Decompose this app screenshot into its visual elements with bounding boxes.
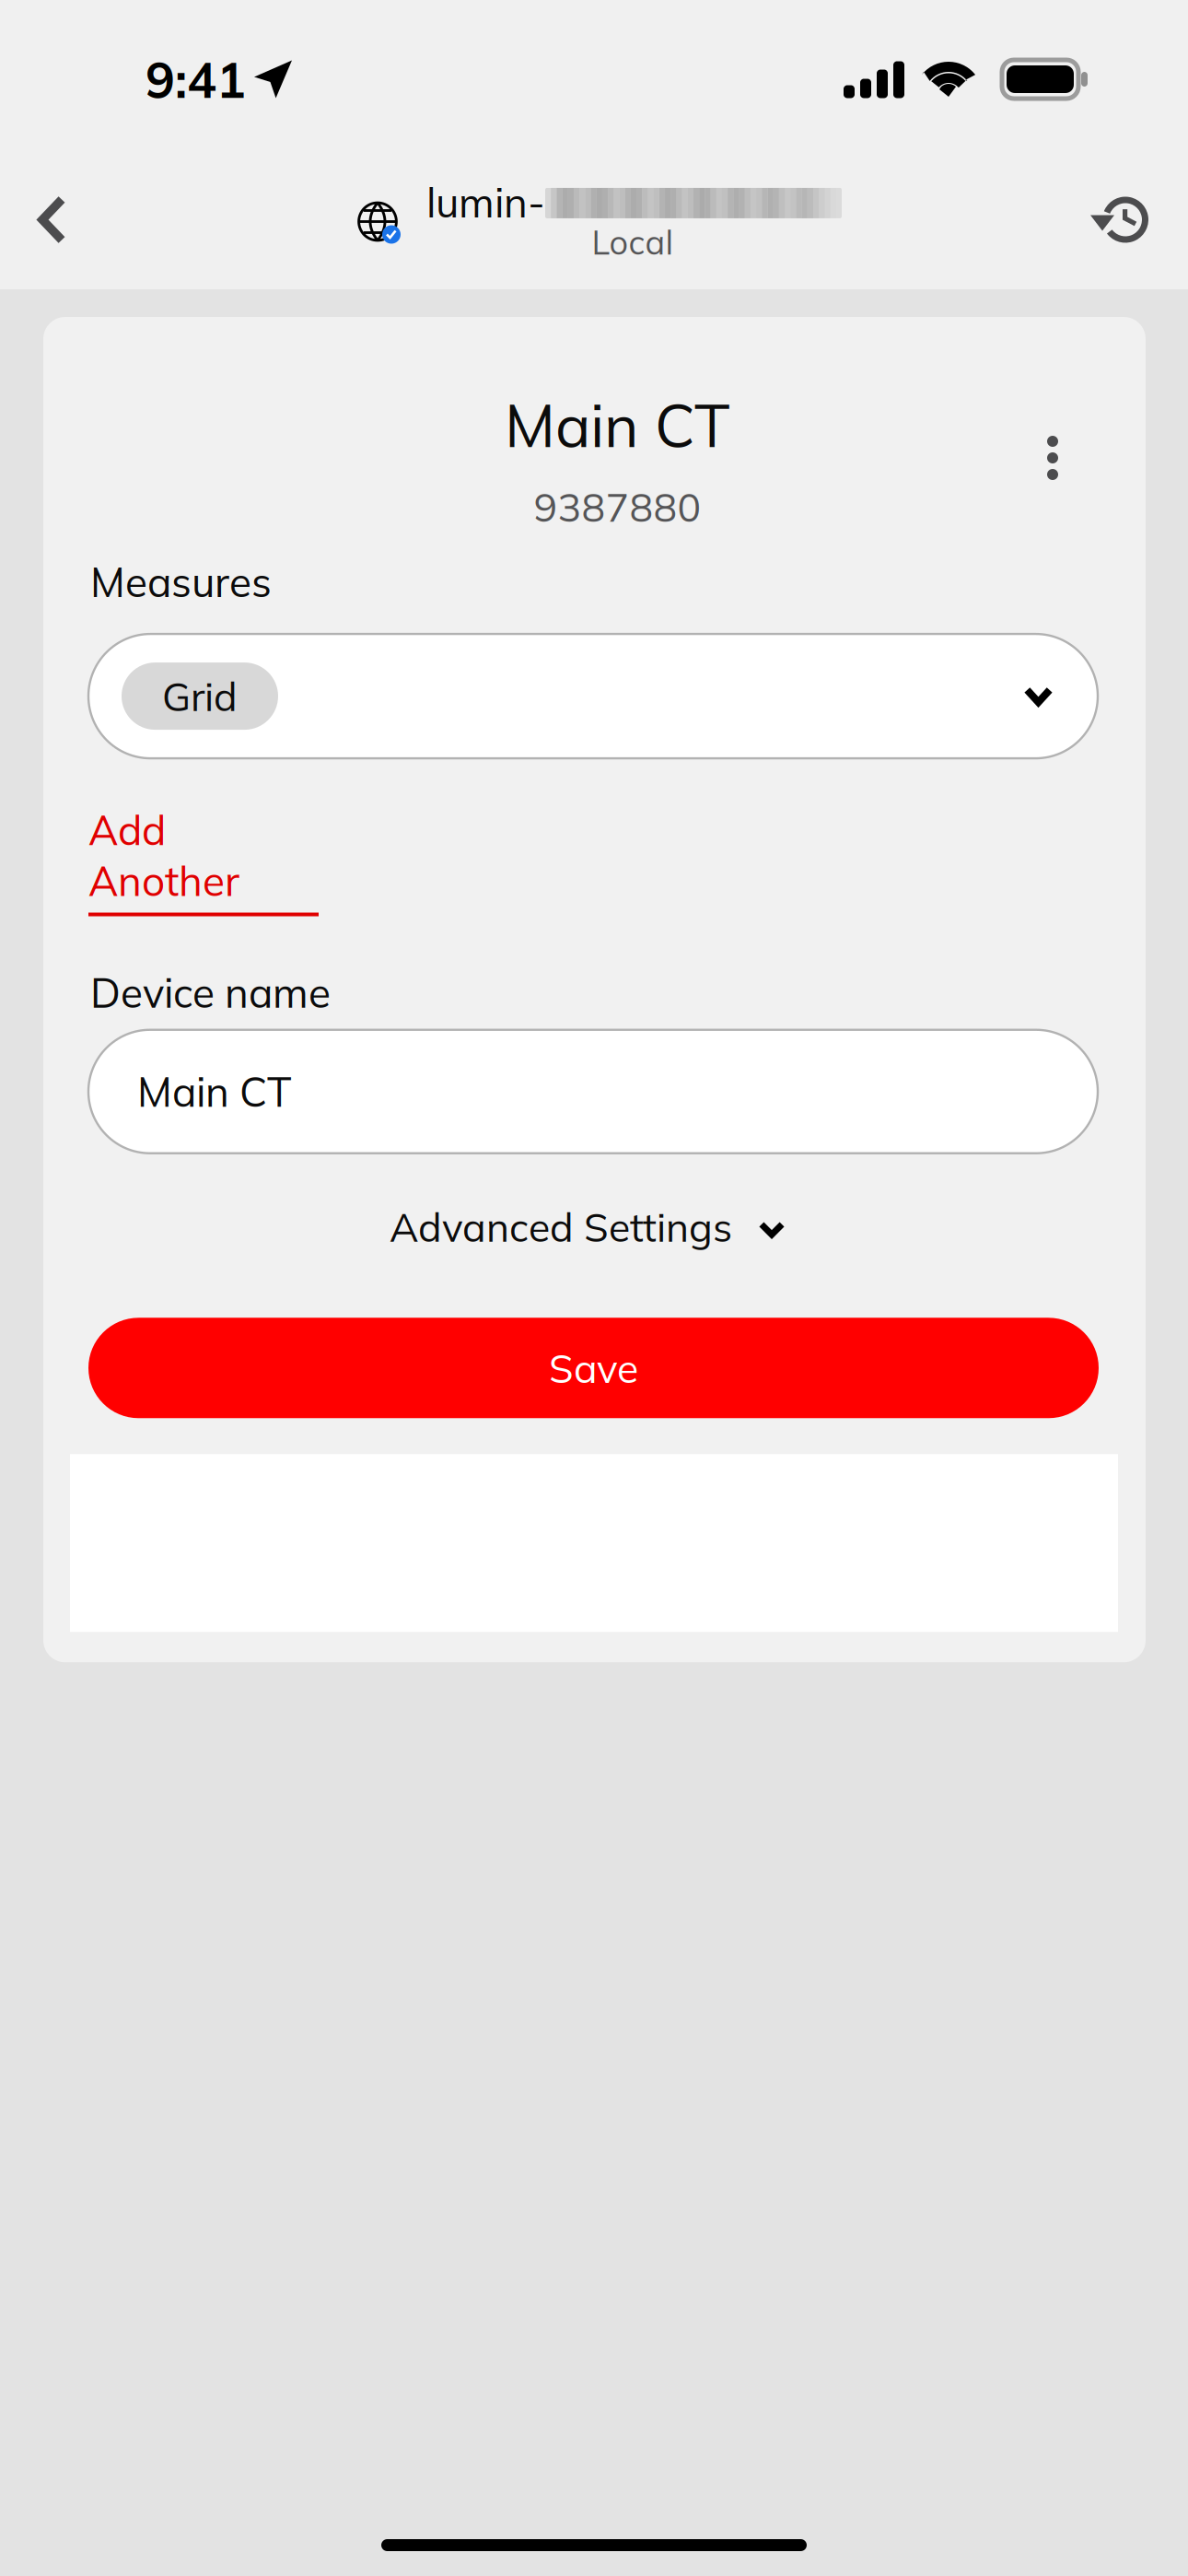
staticText: Advanced Settings [390,1202,732,1251]
button[interactable]: Grid [88,634,1098,758]
button[interactable]: Advanced Settings [43,1185,1146,1268]
button[interactable]: More options [1025,419,1080,497]
staticText: Measures [90,556,272,607]
staticText: 9:41 [146,48,246,110]
staticText: Add Another [88,804,239,906]
staticText: lumin- [426,177,545,228]
button[interactable]: Add Another [88,792,319,929]
staticText: Local [592,221,674,263]
button[interactable]: History [1059,180,1188,270]
staticText: Save [549,1343,638,1393]
button[interactable]: Save [88,1318,1099,1418]
staticText: Main CT [505,388,730,462]
button[interactable]: Main CT [88,1030,1098,1153]
button[interactable]: Back [0,180,97,270]
staticText: Device name [90,967,331,1018]
staticText: Grid [162,671,238,721]
staticText: Main CT [137,1066,292,1117]
staticText: 9387880 [534,482,701,531]
